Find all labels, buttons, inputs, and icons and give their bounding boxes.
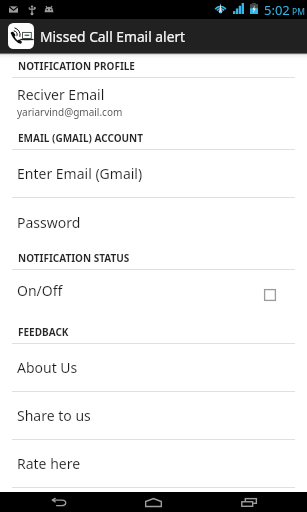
button[interactable]: Enter Email (Gmail) — [0, 150, 307, 197]
button[interactable]: Rate here — [0, 440, 307, 487]
button[interactable]: Password — [0, 198, 307, 246]
button[interactable]: Recent apps — [190, 492, 307, 512]
button[interactable]: Share to us — [0, 392, 307, 439]
button[interactable]: Reciver Email — [0, 78, 307, 126]
staticText: 5:02 — [264, 1, 290, 19]
staticText: Reciver Email — [17, 85, 105, 104]
staticText: Password — [17, 213, 81, 232]
button[interactable]: Home — [117, 492, 190, 512]
staticText: Share to us — [17, 406, 91, 425]
staticText: About Us — [17, 358, 78, 377]
staticText: EMAIL (GMAIL) ACCOUNT — [18, 131, 144, 145]
staticText: yariarvind@gmail.com — [17, 105, 123, 119]
staticText: Enter Email (Gmail) — [17, 164, 143, 183]
button[interactable]: On/Off — [0, 270, 307, 320]
staticText: PM — [292, 6, 305, 18]
staticText: NOTIFICATION PROFILE — [18, 59, 135, 73]
button[interactable]: Back — [0, 492, 117, 512]
staticText: On/Off — [17, 281, 63, 300]
button[interactable]: About Us — [0, 344, 307, 391]
staticText: NOTIFICATION STATUS — [18, 251, 130, 265]
staticText: FEEDBACK — [18, 325, 69, 339]
staticText: Rate here — [17, 454, 81, 473]
staticText: Missed Call Email alert — [40, 27, 186, 46]
